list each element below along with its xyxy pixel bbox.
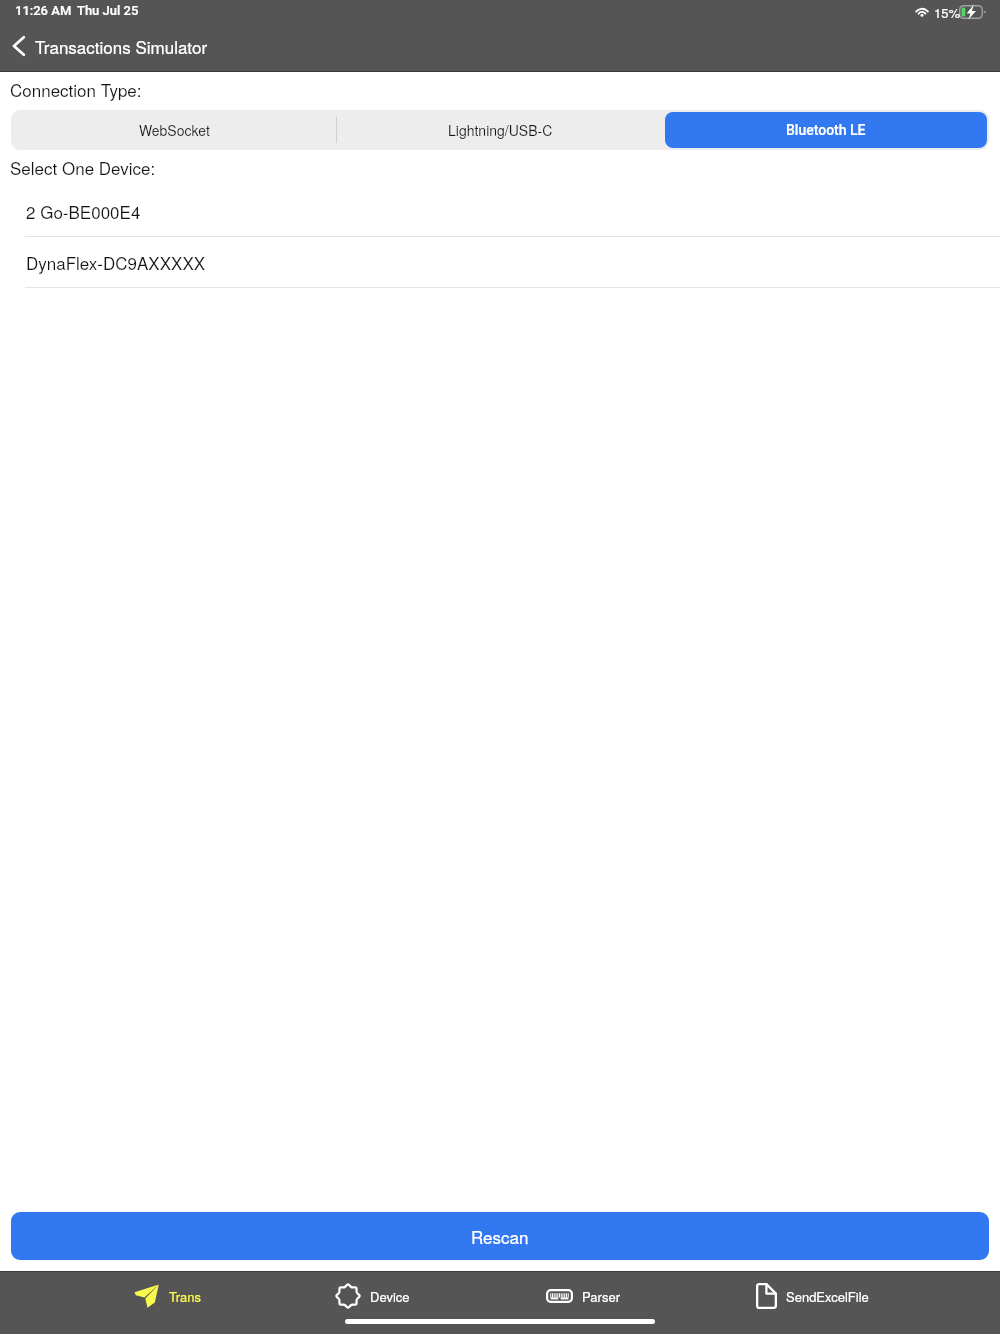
button[interactable]: Rescan (11, 1212, 989, 1260)
staticText: WebSocket (139, 120, 210, 140)
staticText: Lightning/USB-C (448, 120, 553, 140)
button[interactable]: SendExcelFile (756, 1277, 869, 1315)
button[interactable]: DynaFlex-DC9AXXXXX (0, 237, 1000, 288)
staticText: 2 Go-BE000E4 (26, 199, 141, 223)
button[interactable]: Back (2, 26, 218, 66)
staticText: Connection Type: (10, 77, 142, 101)
button[interactable]: Device (335, 1277, 410, 1315)
staticText: Parser (582, 1287, 620, 1306)
other: Battery charging 15% (959, 5, 986, 19)
button[interactable]: Bluetooth LE (665, 112, 987, 148)
button[interactable]: 2 Go-BE000E4 (0, 186, 1000, 237)
staticText: Rescan (471, 1224, 529, 1248)
button[interactable]: Lightning/USB-C (339, 112, 661, 148)
button[interactable]: Parser (546, 1277, 620, 1315)
button[interactable]: WebSocket (13, 112, 335, 148)
other: Back (8, 35, 30, 57)
staticText: 15% (934, 3, 961, 22)
staticText: Bluetooth LE (786, 122, 866, 138)
staticText: Device (370, 1287, 410, 1306)
staticText: Transactions Simulator (35, 34, 208, 58)
staticText: Trans (169, 1287, 201, 1306)
button[interactable]: Trans (134, 1277, 201, 1315)
staticText: 11:26 AM (15, 3, 72, 18)
staticText: Thu Jul 25 (77, 3, 139, 18)
staticText: DynaFlex-DC9AXXXXX (26, 250, 206, 274)
staticText: Select One Device: (10, 155, 156, 179)
other: Wi-Fi (915, 5, 929, 17)
staticText: SendExcelFile (786, 1287, 869, 1306)
